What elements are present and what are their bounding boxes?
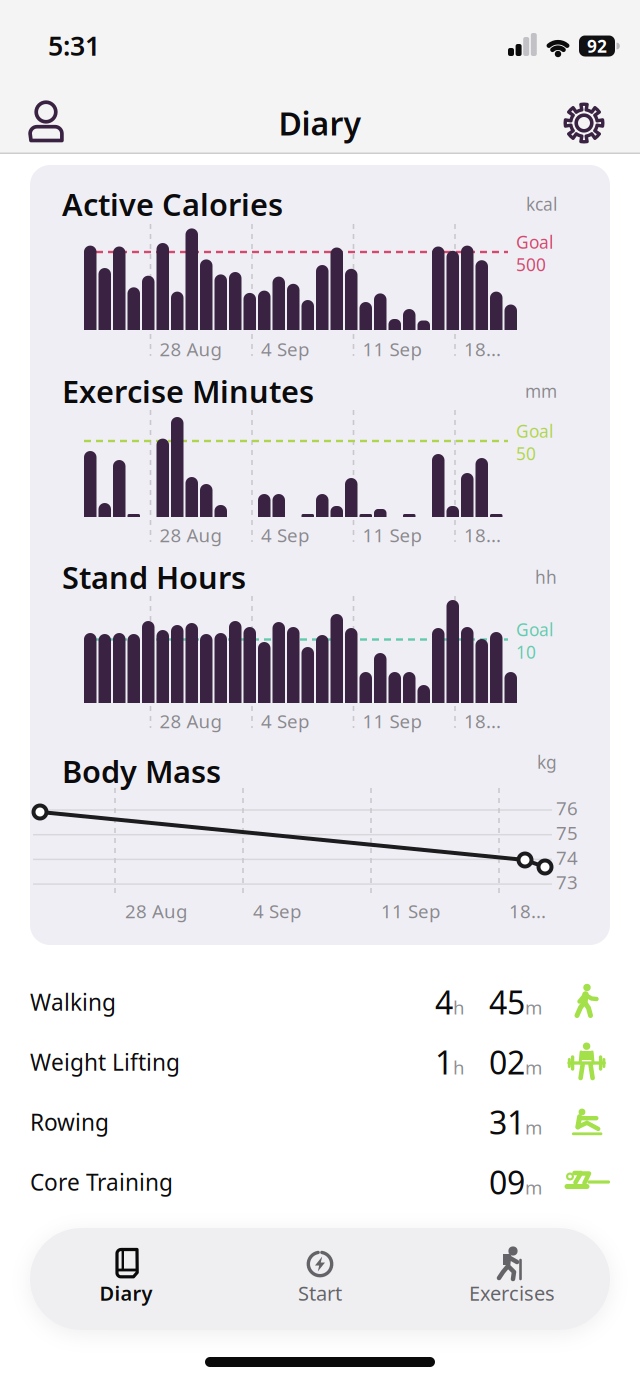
staticText: 1: [435, 1041, 453, 1083]
staticText: 50: [516, 442, 536, 465]
staticText: Rowing: [30, 1107, 109, 1137]
staticText: 4 Sep: [253, 899, 301, 923]
staticText: 4 Sep: [261, 523, 309, 547]
staticText: 11 Sep: [362, 523, 421, 547]
staticText: Exercises: [469, 1280, 555, 1306]
staticText: 10: [516, 640, 536, 663]
staticText: Diary: [278, 102, 361, 144]
staticText: 500: [516, 253, 546, 276]
staticText: 4 Sep: [261, 337, 309, 361]
staticText: 28 Aug: [159, 337, 221, 361]
staticText: 45: [489, 981, 525, 1023]
staticText: 18...: [464, 337, 501, 361]
button[interactable]: Start: [235, 1229, 405, 1329]
staticText: hh: [535, 565, 557, 588]
staticText: m: [525, 1175, 542, 1200]
staticText: kcal: [526, 192, 557, 215]
staticText: 11 Sep: [381, 899, 440, 923]
button[interactable]: Core Training: [30, 1152, 610, 1212]
staticText: 28 Aug: [159, 709, 221, 733]
staticText: 28 Aug: [159, 523, 221, 547]
staticText: 76: [556, 796, 578, 820]
staticText: Core Training: [30, 1167, 173, 1197]
staticText: 11 Sep: [362, 337, 421, 361]
staticText: mm: [525, 379, 557, 402]
button[interactable]: [552, 91, 616, 155]
staticText: kg: [537, 750, 557, 773]
staticText: 18...: [464, 523, 501, 547]
button[interactable]: [14, 91, 78, 155]
staticText: 18...: [464, 709, 501, 733]
staticText: h: [453, 995, 465, 1020]
staticText: Body Mass: [62, 751, 221, 791]
staticText: 02: [489, 1041, 525, 1083]
staticText: 31: [489, 1101, 525, 1143]
staticText: 4: [435, 981, 453, 1023]
staticText: 92: [587, 34, 607, 57]
staticText: Goal: [516, 618, 553, 641]
staticText: Exercise Minutes: [62, 371, 314, 411]
staticText: 5:31: [48, 28, 100, 63]
staticText: 28 Aug: [125, 899, 187, 923]
staticText: Goal: [516, 419, 553, 442]
button[interactable]: Diary: [41, 1229, 211, 1329]
staticText: 4 Sep: [261, 709, 309, 733]
staticText: m: [525, 1115, 542, 1140]
staticText: Walking: [30, 987, 116, 1017]
button[interactable]: Weight Lifting: [30, 1032, 610, 1092]
staticText: 11 Sep: [362, 709, 421, 733]
staticText: Weight Lifting: [30, 1047, 180, 1077]
staticText: 75: [556, 820, 578, 845]
button[interactable]: Walking: [30, 972, 610, 1032]
staticText: Goal: [516, 230, 553, 253]
staticText: Stand Hours: [62, 557, 246, 597]
button[interactable]: Rowing: [30, 1092, 610, 1152]
staticText: 73: [556, 870, 578, 894]
staticText: 18...: [509, 899, 546, 923]
staticText: Start: [298, 1280, 342, 1306]
staticText: Active Calories: [62, 184, 283, 224]
staticText: m: [525, 1055, 542, 1080]
staticText: Diary: [99, 1280, 152, 1306]
staticText: 74: [556, 845, 578, 870]
staticText: h: [453, 1055, 465, 1080]
staticText: 09: [489, 1161, 525, 1203]
staticText: m: [525, 995, 542, 1020]
button[interactable]: Exercises: [427, 1229, 597, 1329]
